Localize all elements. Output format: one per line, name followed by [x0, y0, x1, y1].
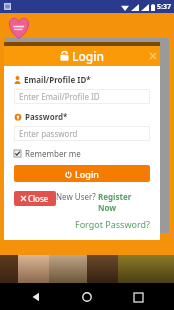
staticText: Close	[28, 193, 49, 204]
staticText: Register Now	[98, 191, 150, 213]
button[interactable]: Enter Email/Profile ID	[14, 89, 150, 104]
staticText: Search	[70, 199, 96, 210]
button[interactable]: Forgot Password?	[75, 218, 150, 230]
staticText: Forgot Password?	[75, 218, 150, 230]
button[interactable]: New User?	[56, 191, 150, 213]
staticText: Login	[72, 48, 104, 64]
button[interactable]: Close dialog	[146, 49, 160, 63]
button[interactable]: Back	[26, 287, 46, 307]
staticText: 5:37	[157, 2, 171, 12]
button[interactable]: Remember me	[14, 148, 81, 159]
button[interactable]: Enter password	[14, 126, 150, 141]
staticText: Enter password	[19, 128, 78, 139]
button[interactable]: Home	[77, 287, 97, 307]
button[interactable]: Recents	[128, 287, 148, 307]
button[interactable]: Login	[14, 165, 150, 182]
button[interactable]: Close	[14, 191, 56, 206]
staticText: New User?	[56, 191, 98, 202]
button[interactable]: Search	[59, 197, 107, 211]
staticText: Photo	[24, 199, 47, 210]
staticText: Login	[75, 168, 99, 180]
staticText: Password*	[25, 111, 68, 122]
staticText: Remember me	[25, 148, 81, 159]
staticText: Enter Email/Profile ID	[19, 91, 100, 102]
staticText: Email/Profile ID*	[24, 74, 91, 85]
